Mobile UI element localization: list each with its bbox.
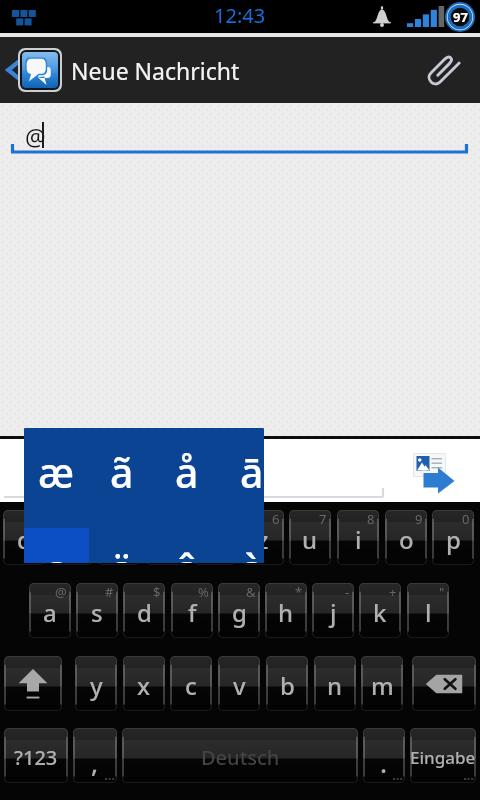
staticText: p	[446, 523, 461, 556]
button[interactable]: m	[361, 656, 403, 711]
button[interactable]: b	[266, 656, 308, 711]
button[interactable]: ã	[89, 428, 154, 528]
button[interactable]	[0, 439, 384, 502]
button[interactable]: +	[359, 583, 401, 638]
button[interactable]: æ	[24, 428, 89, 528]
button[interactable]: $	[123, 583, 165, 638]
button[interactable]: 8	[337, 510, 379, 565]
staticText: q	[17, 523, 32, 556]
staticText: 8	[367, 510, 375, 528]
button[interactable]: ä	[89, 528, 154, 563]
button[interactable]: &	[218, 583, 260, 638]
staticText: 97	[453, 8, 468, 26]
staticText: ā	[240, 444, 264, 500]
staticText: @	[25, 121, 46, 152]
staticText: f	[188, 596, 197, 629]
staticText: c	[185, 669, 197, 702]
staticText: &	[246, 583, 256, 601]
button[interactable]: Up	[0, 37, 240, 103]
button[interactable]: v	[218, 656, 260, 711]
button[interactable]: 1	[3, 510, 45, 565]
button[interactable]: c	[170, 656, 212, 711]
staticText: m	[371, 669, 394, 702]
button[interactable]: ą	[24, 528, 89, 563]
staticText: o	[399, 523, 414, 556]
staticText: ,	[91, 745, 99, 780]
staticText: 7	[319, 510, 327, 528]
button[interactable]: 4	[146, 510, 188, 565]
staticText: x	[137, 669, 151, 702]
button[interactable]: å	[154, 428, 219, 528]
button[interactable]: -	[312, 583, 354, 638]
button[interactable]: Eingabe	[410, 728, 476, 783]
button[interactable]: Send message	[384, 439, 480, 502]
staticText: 9	[415, 510, 423, 528]
button[interactable]: 0	[432, 510, 474, 565]
staticText: $	[153, 583, 161, 601]
staticText: b	[280, 669, 295, 702]
staticText: e	[112, 523, 126, 556]
staticText: n	[327, 669, 343, 702]
staticText: 6	[272, 510, 280, 528]
button[interactable]: *	[265, 583, 307, 638]
button[interactable]: 3	[98, 510, 140, 565]
button[interactable]: n	[314, 656, 356, 711]
button[interactable]: y	[75, 656, 117, 711]
staticText: ã	[110, 444, 134, 500]
button[interactable]: 7	[289, 510, 331, 565]
button[interactable]: #	[76, 583, 118, 638]
button[interactable]: â	[154, 528, 219, 563]
button[interactable]: 2	[51, 510, 93, 565]
button[interactable]: Shift	[4, 656, 62, 711]
staticText: #	[105, 583, 114, 601]
staticText: h	[278, 596, 294, 629]
staticText: æ	[38, 444, 75, 500]
button[interactable]: 9	[385, 510, 427, 565]
button[interactable]: ā	[219, 428, 264, 528]
staticText: k	[373, 596, 387, 629]
staticText: ą	[45, 541, 69, 563]
button[interactable]: "	[407, 583, 449, 638]
staticText: l	[425, 596, 432, 629]
staticText: g	[232, 596, 247, 629]
button[interactable]: %	[171, 583, 213, 638]
staticText: a	[43, 596, 57, 629]
button[interactable]: Deutsch	[122, 728, 358, 783]
button[interactable]: .	[363, 728, 405, 783]
button[interactable]: 6	[242, 510, 284, 565]
button[interactable]: ,	[73, 728, 117, 783]
button[interactable]: x	[123, 656, 165, 711]
staticText: z	[257, 523, 269, 556]
staticText: i	[355, 523, 362, 556]
button[interactable]: à	[219, 528, 264, 563]
staticText: w	[62, 523, 82, 556]
staticText: u	[302, 523, 318, 556]
button[interactable]: @	[29, 583, 71, 638]
staticText: @	[55, 583, 67, 601]
button[interactable]: Delete	[412, 656, 476, 711]
staticText: -	[345, 583, 350, 601]
staticText: Deutsch	[201, 744, 280, 771]
staticText: ä	[110, 541, 134, 563]
button[interactable]: Attach file	[406, 37, 480, 103]
button[interactable]: 5	[194, 510, 236, 565]
staticText: 0	[462, 510, 470, 528]
staticText: ?123	[14, 744, 58, 771]
staticText: v	[233, 669, 246, 702]
staticText: â	[175, 541, 199, 563]
staticText: d	[137, 596, 152, 629]
staticText: y	[90, 669, 103, 702]
staticText: 12:43	[214, 2, 266, 29]
staticText: +	[389, 583, 397, 601]
staticText: "	[439, 583, 445, 601]
staticText: %	[198, 583, 209, 601]
staticText: j	[330, 596, 337, 629]
button[interactable]: ?123	[4, 728, 68, 783]
